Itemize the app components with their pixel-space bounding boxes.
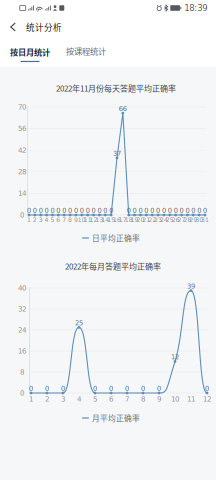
staticText: 1 [27, 216, 31, 223]
staticText: 56 [18, 124, 26, 133]
staticText: 18:39 [184, 3, 207, 13]
staticText: 31 [201, 216, 209, 223]
staticText: 28 [183, 216, 191, 223]
staticText: 42 [18, 146, 26, 154]
staticText: 30 [195, 216, 203, 223]
staticText: 27 [177, 216, 185, 223]
staticText: 0 [138, 207, 142, 214]
staticText: 0 [39, 207, 43, 214]
staticText: 按日月统计 [10, 46, 50, 58]
staticText: 66 [119, 105, 127, 113]
staticText: 0 [50, 207, 54, 214]
staticText: 8 [141, 395, 145, 403]
staticText: 0 [168, 207, 172, 214]
staticText: 12 [203, 395, 211, 403]
staticText: 按课程统计 [66, 45, 106, 57]
staticText: 25 [166, 216, 174, 223]
staticText: 8 [20, 368, 24, 376]
staticText: 0 [27, 207, 31, 214]
staticText: 17 [119, 216, 127, 223]
staticText: 0 [162, 207, 166, 214]
staticText: 19 [131, 216, 139, 223]
staticText: 2022年11月份每天答题平均正确率 [56, 82, 176, 94]
staticText: 22 [148, 216, 156, 223]
staticText: 10 [78, 216, 86, 223]
staticText: 0 [80, 207, 84, 214]
staticText: 1 [29, 395, 33, 403]
staticText: 统计分析 [26, 21, 62, 33]
staticText: 0 [127, 207, 131, 214]
staticText: 4 [77, 395, 81, 403]
staticText: 0 [97, 207, 101, 214]
staticText: 37 [113, 149, 121, 157]
staticText: 6 [56, 216, 60, 223]
staticText: 2 [45, 395, 49, 403]
staticText: 0 [174, 207, 178, 214]
staticText: 0 [144, 207, 148, 214]
staticText: 0 [141, 385, 145, 392]
staticText: 28 [18, 168, 26, 176]
staticText: 21 [142, 216, 150, 223]
staticText: 20 [136, 216, 144, 223]
staticText: 0 [157, 385, 161, 392]
staticText: 5 [93, 395, 97, 403]
staticText: 0 [33, 207, 37, 214]
staticText: 16 [18, 347, 26, 355]
staticText: 16 [113, 216, 121, 223]
staticText: 24 [160, 216, 168, 223]
staticText: 18 [125, 216, 133, 223]
staticText: 0 [68, 207, 72, 214]
staticText: 3 [39, 216, 43, 223]
staticText: 0 [205, 385, 209, 392]
staticText: 0 [191, 207, 195, 214]
staticText: 29 [189, 216, 197, 223]
staticText: 0 [156, 207, 160, 214]
staticText: 2 [33, 216, 37, 223]
staticText: 7 [125, 395, 129, 403]
staticText: 23 [154, 216, 162, 223]
staticText: 12 [171, 353, 179, 361]
staticText: 4 [45, 216, 49, 223]
staticText: 8 [68, 216, 72, 223]
staticText: 40 [18, 284, 26, 292]
staticText: 0 [45, 207, 49, 214]
staticText: 12 [89, 216, 97, 223]
staticText: 2022年每月答题平均正确率 [65, 260, 161, 272]
staticText: 32 [18, 305, 26, 313]
staticText: 15 [107, 216, 115, 223]
staticText: 0 [62, 207, 66, 214]
staticText: 0 [20, 211, 24, 219]
staticText: 11 [187, 395, 195, 403]
staticText: 0 [74, 207, 78, 214]
staticText: 0 [61, 385, 65, 392]
staticText: 0 [20, 389, 24, 397]
staticText: 14 [101, 216, 109, 223]
button[interactable]: Back [3, 17, 23, 37]
staticText: 月平均正确率 [92, 412, 140, 424]
staticText: 0 [185, 207, 189, 214]
staticText: 0 [203, 207, 207, 214]
staticText: 0 [91, 207, 95, 214]
staticText: 13 [95, 216, 103, 223]
staticText: 10 [171, 395, 179, 403]
staticText: 24 [18, 326, 26, 334]
staticText: 39 [187, 282, 195, 290]
staticText: 0 [109, 207, 113, 214]
staticText: 9 [157, 395, 161, 403]
staticText: 0 [150, 207, 154, 214]
staticText: 0 [133, 207, 137, 214]
staticText: 70 [18, 103, 26, 111]
staticText: 0 [109, 385, 113, 392]
button[interactable]: 按日月统计 [6, 43, 54, 65]
staticText: 5 [50, 216, 54, 223]
staticText: 0 [125, 385, 129, 392]
button[interactable]: 按课程统计 [62, 40, 110, 62]
staticText: 0 [56, 207, 60, 214]
staticText: 6 [109, 395, 113, 403]
staticText: 0 [179, 207, 183, 214]
staticText: 11 [84, 216, 92, 223]
staticText: 26 [172, 216, 180, 223]
staticText: 0 [45, 385, 49, 392]
staticText: 0 [29, 385, 33, 392]
staticText: 0 [93, 385, 97, 392]
